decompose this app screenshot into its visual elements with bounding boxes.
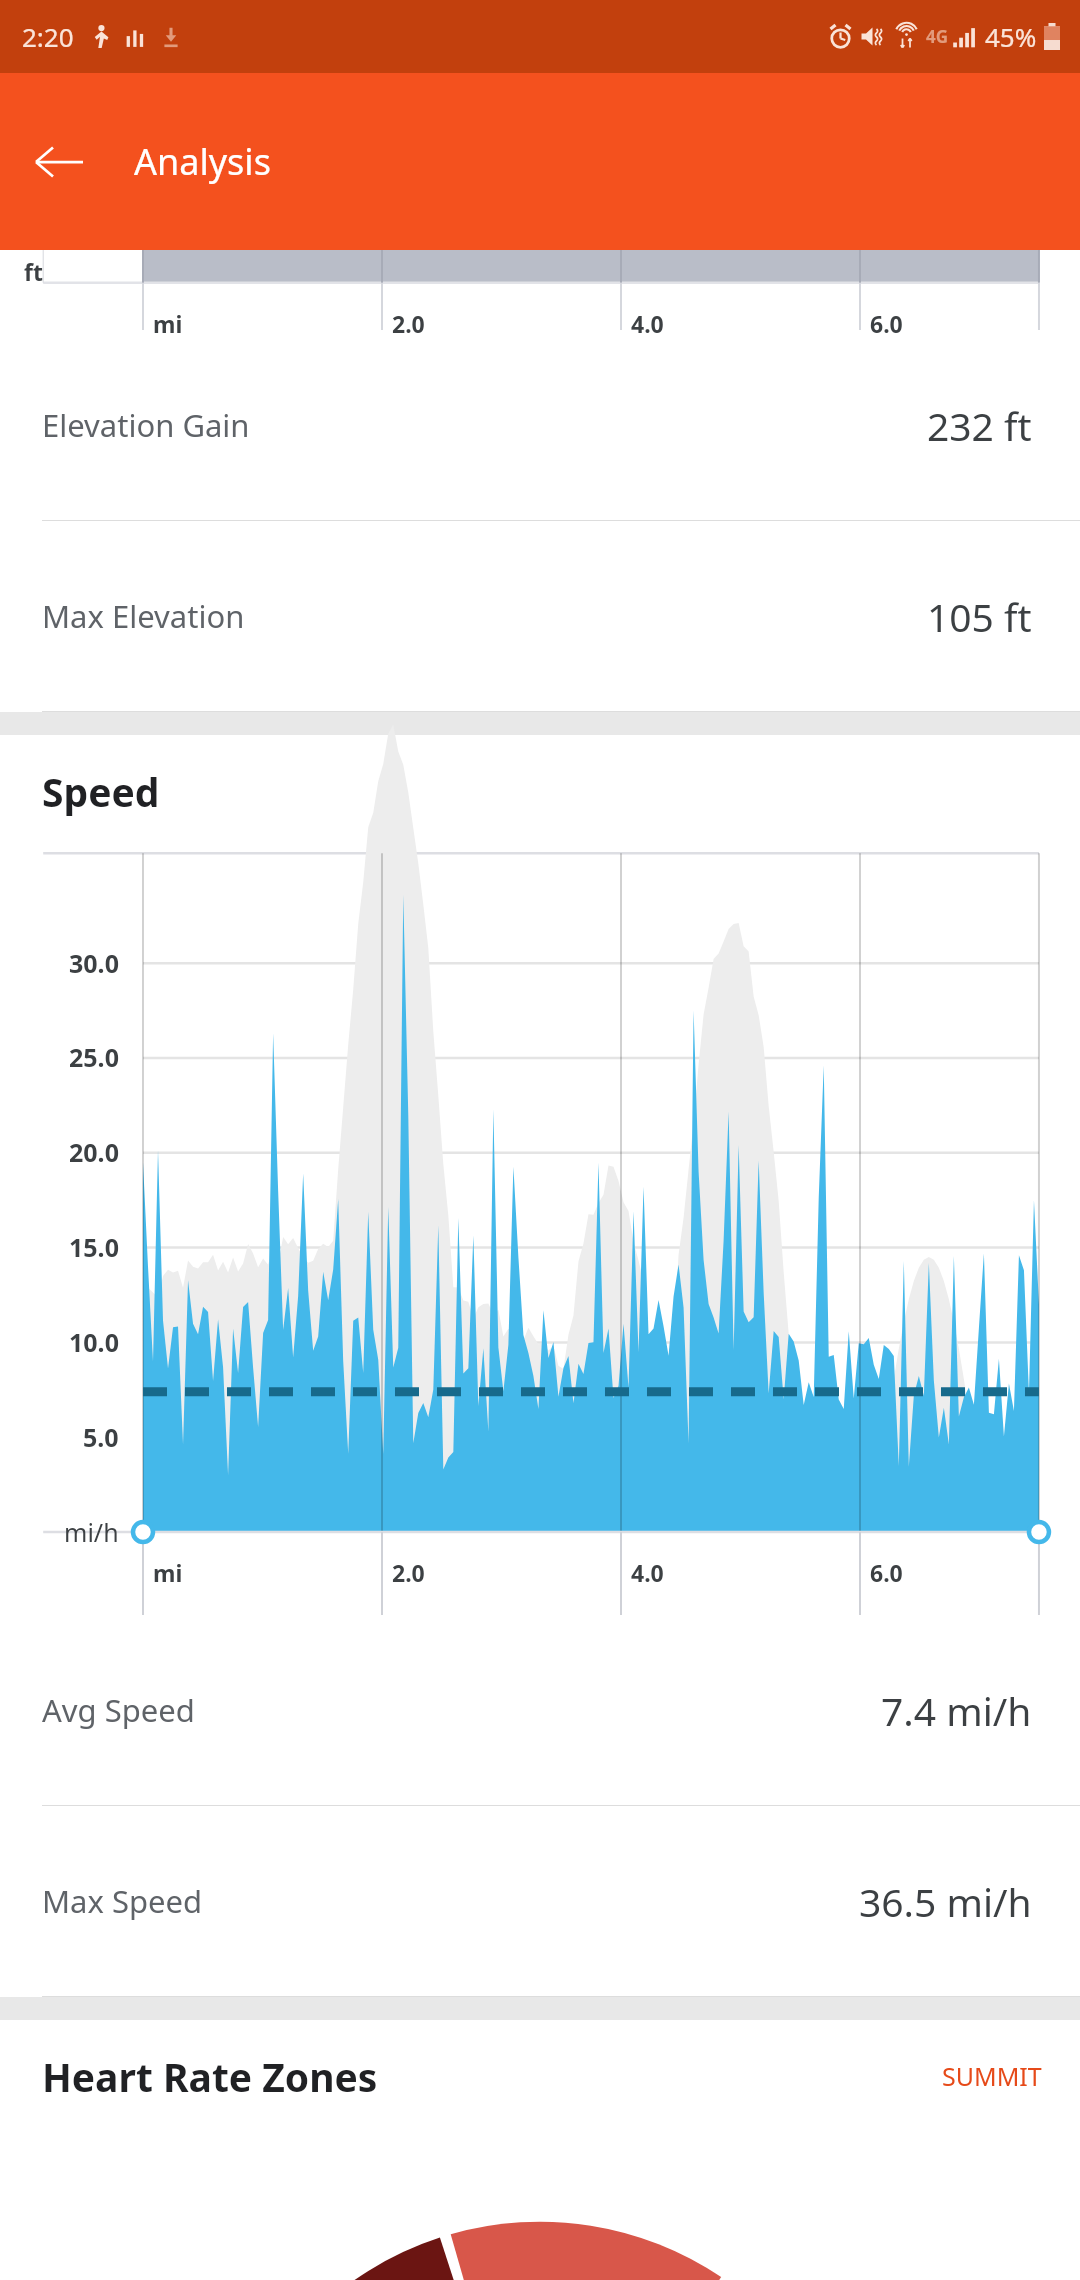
staticText: 5.0 xyxy=(83,1420,119,1454)
staticText: 15.0 xyxy=(69,1230,119,1264)
staticText: Max Elevation xyxy=(42,595,245,637)
staticText: 105 ft xyxy=(927,590,1032,643)
staticText: 2.0 xyxy=(392,1557,425,1588)
button[interactable]: Elevation Gain xyxy=(0,330,1080,521)
staticText: 2.0 xyxy=(392,308,425,339)
staticText: 4.0 xyxy=(631,308,664,339)
staticText: 7.4 mi/h xyxy=(881,1684,1032,1737)
staticText: 4G xyxy=(926,25,949,48)
staticText: Avg Speed xyxy=(42,1689,195,1731)
staticText: SUMMIT xyxy=(942,2059,1042,2093)
staticText: 30.0 xyxy=(69,946,119,980)
staticText: Max Speed xyxy=(42,1880,203,1922)
button[interactable]: Back xyxy=(16,119,102,205)
staticText: Speed xyxy=(42,765,160,818)
button[interactable]: Avg Speed xyxy=(0,1615,1080,1806)
staticText: mi xyxy=(153,308,183,339)
staticText: mi/h xyxy=(64,1515,119,1549)
staticText: 20.0 xyxy=(69,1135,119,1169)
staticText: 45% xyxy=(985,19,1037,54)
staticText: 6.0 xyxy=(870,308,903,339)
staticText: 6.0 xyxy=(870,1557,903,1588)
staticText: 25.0 xyxy=(69,1040,119,1074)
staticText: Elevation Gain xyxy=(42,404,250,446)
staticText: ft xyxy=(24,256,43,287)
button[interactable]: SUMMIT xyxy=(934,2051,1050,2101)
staticText: 10.0 xyxy=(69,1325,119,1359)
button[interactable]: Max Speed xyxy=(0,1806,1080,1997)
staticText: Analysis xyxy=(134,137,271,186)
staticText: mi xyxy=(153,1557,183,1588)
staticText: Heart Rate Zones xyxy=(42,2050,378,2103)
staticText: 36.5 mi/h xyxy=(859,1875,1032,1928)
button[interactable]: Max Elevation xyxy=(0,521,1080,712)
staticText: 2:20 xyxy=(22,19,74,54)
staticText: 4.0 xyxy=(631,1557,664,1588)
staticText: 232 ft xyxy=(927,399,1032,452)
